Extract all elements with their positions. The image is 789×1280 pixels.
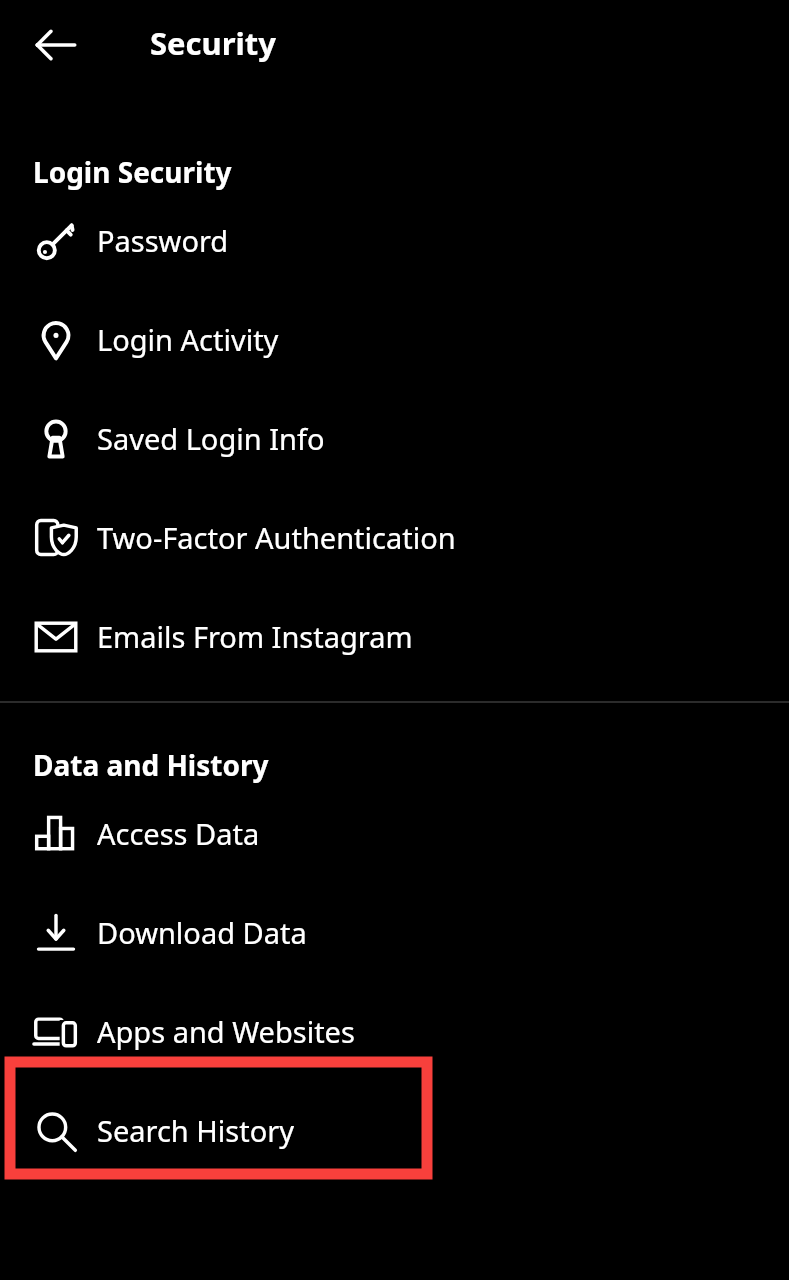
- staticText: Security: [150, 22, 277, 64]
- staticText: Password: [97, 221, 229, 260]
- staticText: Saved Login Info: [97, 419, 325, 458]
- staticText: Data and History: [33, 746, 269, 784]
- staticText: Login Activity: [97, 320, 279, 359]
- button[interactable]: Emails From Instagram: [0, 587, 789, 686]
- button[interactable]: Two-Factor Authentication: [0, 488, 789, 587]
- button[interactable]: Download Data: [0, 883, 789, 982]
- button[interactable]: Access Data: [0, 784, 789, 883]
- button[interactable]: Password: [0, 191, 789, 290]
- staticText: Download Data: [97, 913, 307, 952]
- staticText: Login Security: [33, 153, 232, 191]
- staticText: Search History: [97, 1111, 294, 1150]
- staticText: Emails From Instagram: [97, 617, 413, 656]
- button[interactable]: Search History: [0, 1081, 789, 1180]
- staticText: Two-Factor Authentication: [97, 518, 456, 557]
- staticText: Apps and Websites: [97, 1012, 355, 1051]
- button[interactable]: Login Activity: [0, 290, 789, 389]
- button[interactable]: Saved Login Info: [0, 389, 789, 488]
- button[interactable]: Apps and Websites: [0, 982, 789, 1081]
- staticText: Access Data: [97, 814, 260, 853]
- button[interactable]: Back: [20, 9, 92, 81]
